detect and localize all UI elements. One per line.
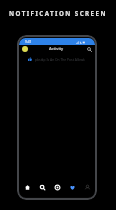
staticText: NOTIFICATION SCREEN	[0, 9, 116, 17]
button[interactable]: Notifications	[65, 183, 80, 191]
button[interactable]: pbstkp Is An On The Post Allowk	[19, 55, 95, 63]
staticText: Activity	[49, 46, 64, 51]
button[interactable]: Search	[86, 46, 92, 52]
button[interactable]: Profile	[22, 46, 28, 52]
button[interactable]: Reels	[50, 183, 65, 191]
button[interactable]: Search	[35, 183, 50, 191]
button[interactable]: Home	[19, 183, 35, 191]
button[interactable]: Profile	[80, 183, 95, 191]
staticText: pbstkp Is An On The Post Allowk	[35, 57, 85, 61]
staticText: 9:41	[25, 40, 32, 44]
